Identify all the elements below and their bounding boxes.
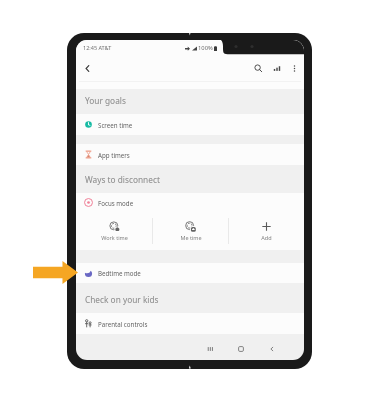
staticText: Focus mode: [98, 199, 134, 207]
staticText: Me time: [180, 234, 202, 241]
staticText: Ways to disconnect: [85, 174, 160, 185]
staticText: App timers: [98, 151, 130, 159]
button[interactable]: Bedtime mode: [76, 263, 304, 283]
staticText: Parental controls: [98, 320, 148, 328]
staticText: Your goals: [85, 95, 126, 106]
button[interactable]: Focus mode: [76, 193, 304, 212]
button[interactable]: Me time: [153, 212, 228, 250]
staticText: Work time: [101, 234, 128, 241]
staticText: 12:45 AT&T: [83, 44, 112, 51]
staticText: Add: [261, 234, 272, 241]
staticText: 100%: [198, 44, 213, 52]
button[interactable]: Screen time: [76, 114, 304, 135]
button[interactable]: Home: [230, 338, 252, 360]
button[interactable]: Parental controls: [76, 313, 304, 334]
button[interactable]: Work time: [76, 212, 152, 250]
button[interactable]: Back: [78, 59, 96, 77]
staticText: Bedtime mode: [98, 269, 141, 277]
button[interactable]: Usage statistics: [268, 59, 286, 77]
staticText: Screen time: [98, 121, 133, 129]
button[interactable]: Add: [229, 212, 304, 250]
button[interactable]: Search: [249, 59, 267, 77]
button[interactable]: More options: [286, 60, 302, 76]
staticText: Check on your kids: [85, 294, 159, 305]
button[interactable]: Back: [261, 338, 283, 360]
button[interactable]: App timers: [76, 144, 304, 165]
button[interactable]: Recents: [199, 338, 221, 360]
